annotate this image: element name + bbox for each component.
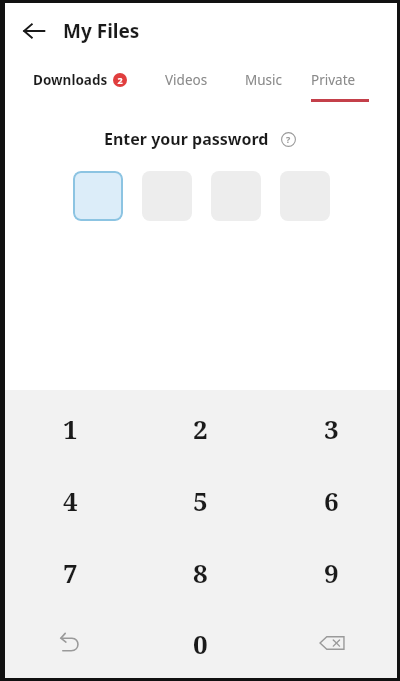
staticText: 2 [117, 74, 123, 86]
button[interactable]: Back [13, 10, 55, 52]
staticText: 6 [324, 483, 339, 518]
staticText: 7 [63, 555, 78, 590]
button[interactable]: 7 [5, 536, 135, 608]
button[interactable]: Videos [165, 71, 208, 89]
staticText: Downloads [33, 71, 108, 89]
button[interactable]: Backspace [266, 608, 397, 678]
button[interactable]: 4 [5, 464, 135, 536]
button[interactable]: 0 [135, 608, 266, 678]
button[interactable]: Downloads [27, 67, 133, 93]
staticText: ? [286, 133, 291, 145]
button[interactable]: 2 [135, 392, 266, 464]
button[interactable]: Private [311, 71, 356, 89]
staticText: 8 [193, 555, 208, 590]
button[interactable]: 9 [266, 536, 397, 608]
button[interactable]: 6 [266, 464, 397, 536]
button[interactable]: 5 [135, 464, 266, 536]
staticText: 0 [193, 626, 208, 661]
staticText: 2 [193, 411, 208, 446]
staticText: 4 [63, 483, 78, 518]
button[interactable]: Help [277, 128, 299, 150]
staticText: 9 [324, 555, 339, 590]
button[interactable]: 8 [135, 536, 266, 608]
staticText: 1 [63, 411, 78, 446]
staticText: Private [311, 71, 356, 89]
button[interactable]: 1 [5, 392, 135, 464]
button[interactable]: Password digit 1 [73, 171, 123, 221]
staticText: 3 [324, 411, 339, 446]
button[interactable]: Undo [5, 608, 135, 678]
button[interactable]: 3 [266, 392, 397, 464]
button[interactable]: Music [245, 71, 283, 89]
staticText: Enter your password [104, 128, 269, 150]
staticText: My Files [63, 18, 140, 44]
staticText: 5 [193, 483, 208, 518]
